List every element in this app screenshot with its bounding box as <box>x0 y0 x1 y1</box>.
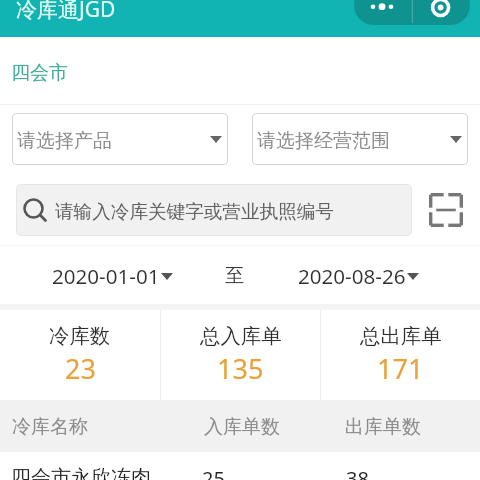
button[interactable]: 请输入冷库关键字或营业执照编号 <box>16 184 412 236</box>
staticText: 23 <box>65 350 96 387</box>
staticText: 请选择经营范围 <box>257 129 450 153</box>
button[interactable]: 总入库单 <box>161 310 320 400</box>
staticText: 总入库单 <box>200 323 282 349</box>
button[interactable]: Scan code <box>429 193 463 227</box>
staticText: 至 <box>225 264 244 288</box>
staticText: 四会市永欣冻肉 <box>11 465 151 480</box>
button[interactable]: 四会市永欣冻肉 <box>0 452 480 480</box>
staticText: 25 <box>202 465 225 480</box>
staticText: 四会市 <box>11 61 68 85</box>
staticText: 171 <box>377 350 424 387</box>
staticText: 总出库单 <box>360 323 442 349</box>
staticText: 135 <box>217 350 264 387</box>
button[interactable]: More options <box>354 0 470 25</box>
button[interactable]: 冷库数 <box>0 310 160 400</box>
staticText: 出库单数 <box>345 415 421 439</box>
button[interactable]: 请选择经营范围 <box>252 113 468 165</box>
button[interactable]: 总出库单 <box>321 310 480 400</box>
staticText: 冷库通JGD <box>16 0 116 24</box>
staticText: 38 <box>346 465 369 480</box>
staticText: 冷库数 <box>49 323 111 349</box>
button[interactable]: 请选择产品 <box>12 113 228 165</box>
staticText: 2020-01-01 <box>52 262 160 290</box>
button[interactable]: 2020-08-26 <box>298 262 418 290</box>
staticText: 请选择产品 <box>17 129 210 153</box>
staticText: 请输入冷库关键字或营业执照编号 <box>55 200 334 223</box>
staticText: 冷库名称 <box>12 415 88 439</box>
staticText: 2020-08-26 <box>298 262 406 290</box>
staticText: 入库单数 <box>204 415 280 439</box>
button[interactable]: 2020-01-01 <box>52 262 172 290</box>
